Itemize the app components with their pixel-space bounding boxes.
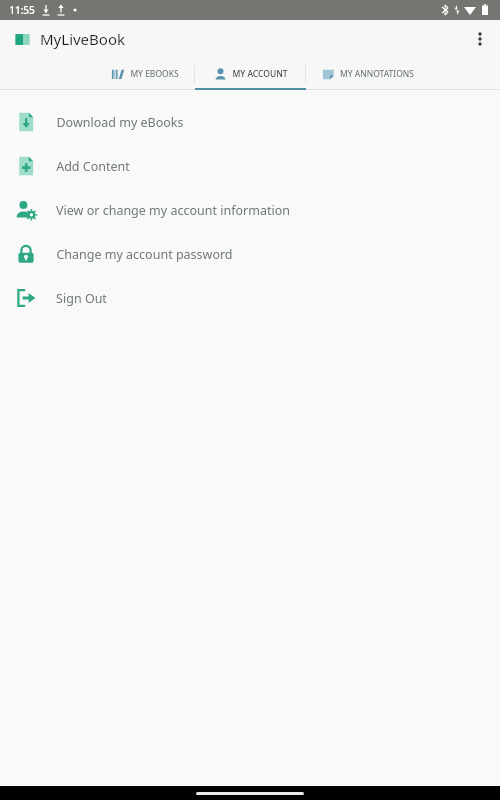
button[interactable]: More options	[460, 20, 500, 58]
staticText: Download my eBooks	[56, 114, 184, 131]
staticText: MY EBOOKS	[130, 68, 179, 80]
button[interactable]: Change my account password	[0, 232, 500, 276]
staticText: MyLiveBook	[40, 29, 125, 49]
staticText: MY ACCOUNT	[232, 68, 288, 80]
button[interactable]: Add Content	[0, 144, 500, 188]
staticText: 11:55	[9, 3, 35, 17]
button[interactable]: View or change my account information	[0, 188, 500, 232]
button[interactable]: Download my eBooks	[0, 100, 500, 144]
staticText: Add Content	[56, 158, 130, 175]
button[interactable]: Sign Out	[0, 276, 500, 320]
staticText: MY ANNOTATIONS	[340, 68, 414, 80]
staticText: Change my account password	[56, 246, 233, 263]
button[interactable]: MY EBOOKS	[96, 58, 194, 90]
button[interactable]: MY ACCOUNT	[195, 58, 305, 90]
button[interactable]: MY ANNOTATIONS	[306, 58, 428, 90]
staticText: Sign Out	[56, 290, 107, 307]
staticText: View or change my account information	[56, 202, 290, 219]
